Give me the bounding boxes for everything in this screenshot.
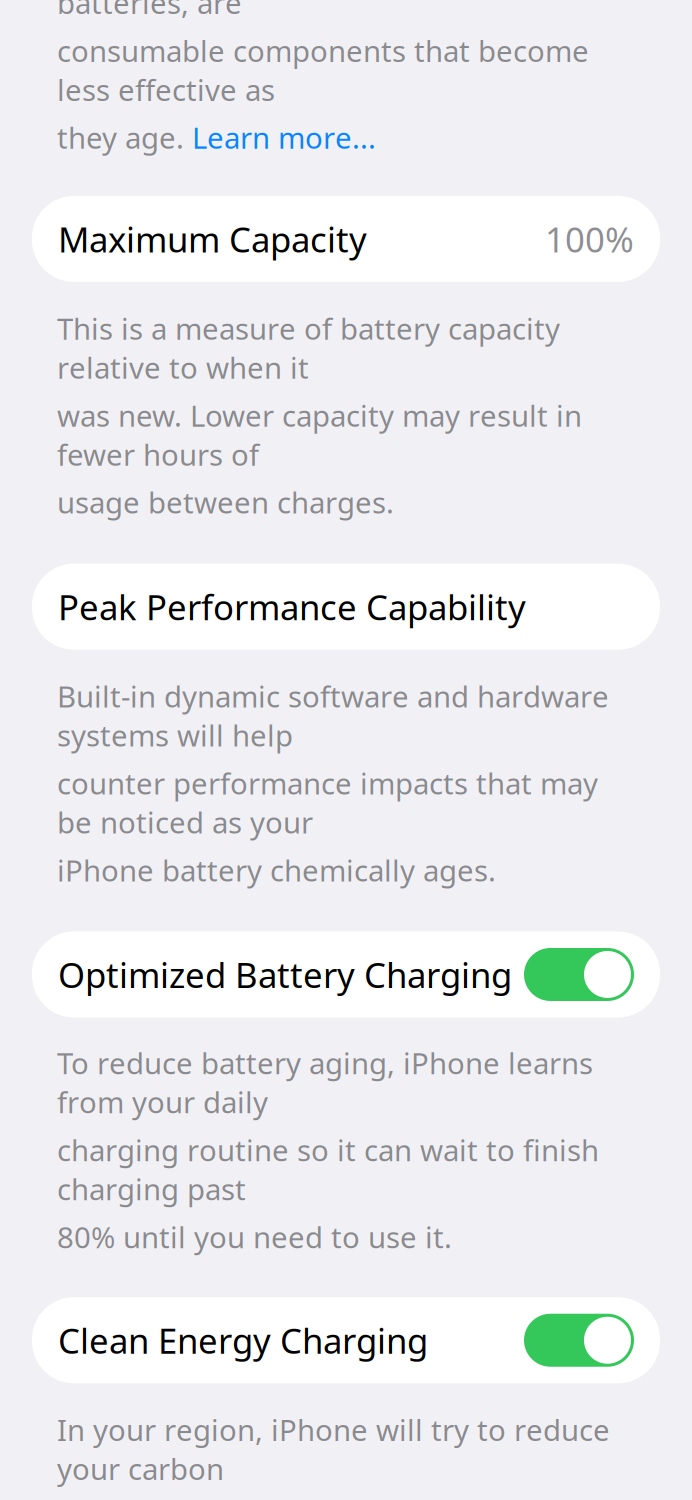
button[interactable]: Maximum Capacity — [0, 196, 692, 282]
staticText: 100% — [545, 216, 634, 262]
staticText: 80% until you need to use it. — [57, 1217, 452, 1256]
staticText: To reduce battery aging, iPhone learns f… — [57, 1043, 593, 1121]
staticText: In your region, iPhone will try to reduc… — [57, 1410, 610, 1488]
staticText: iPhone battery chemically ages. — [57, 850, 496, 889]
button[interactable]: Learn more... — [192, 118, 376, 157]
button[interactable]: Peak Performance Capability — [0, 564, 692, 650]
staticText: Built-in dynamic software and hardware s… — [57, 677, 609, 755]
staticText: they age. — [57, 118, 192, 157]
staticText: usage between charges. — [57, 483, 394, 522]
staticText: Maximum Capacity — [58, 216, 367, 262]
staticText: Clean Energy Charging — [58, 1317, 428, 1363]
staticText: Learn more... — [192, 118, 376, 157]
staticText: Phone batteries, like all rechargeable b… — [57, 0, 574, 22]
staticText: Peak Performance Capability — [58, 584, 526, 630]
staticText: counter performance impacts that may be … — [57, 764, 598, 841]
staticText: Optimized Battery Charging — [58, 951, 512, 997]
staticText: was new. Lower capacity may result in fe… — [57, 396, 582, 474]
button[interactable]: Optimized Battery Charging — [0, 931, 692, 1017]
staticText: consumable components that become less e… — [57, 31, 589, 109]
button[interactable]: Clean Energy Charging — [0, 1297, 692, 1383]
staticText: charging routine so it can wait to finis… — [57, 1130, 599, 1208]
staticText: This is a measure of battery capacity re… — [57, 309, 560, 387]
